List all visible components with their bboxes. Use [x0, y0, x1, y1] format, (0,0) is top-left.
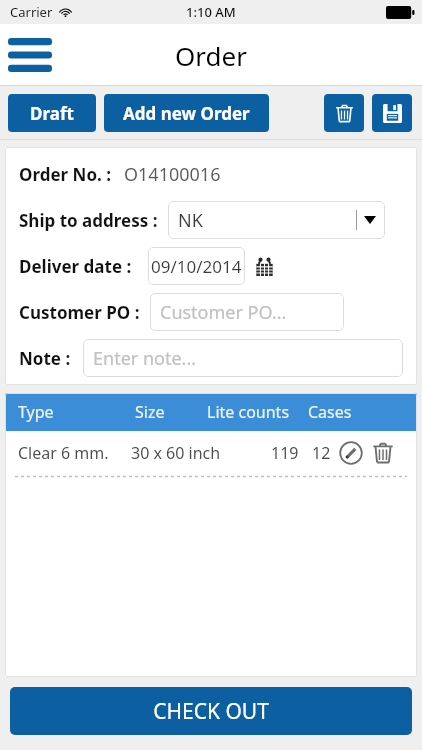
button[interactable]: 09/10/2014	[148, 247, 245, 285]
button[interactable]: Delete order	[324, 94, 364, 132]
staticText: 12	[312, 442, 331, 464]
staticText: Type	[18, 401, 54, 423]
staticText: Enter note...	[93, 346, 197, 371]
staticText: Note :	[19, 347, 71, 370]
button[interactable]: Add new Order	[104, 94, 269, 132]
button[interactable]: Customer PO...	[150, 293, 344, 331]
staticText: Lite counts	[207, 401, 290, 423]
button[interactable]: Clear 6 mm.	[5, 431, 417, 475]
staticText: Clear 6 mm.	[18, 442, 109, 464]
staticText: Cases	[308, 401, 352, 423]
staticText: Ship to address :	[19, 209, 158, 232]
button[interactable]: Enter note...	[83, 339, 403, 377]
button[interactable]: Delete item	[369, 439, 397, 467]
staticText: O14100016	[124, 162, 221, 187]
button[interactable]: CHECK OUT	[10, 687, 412, 735]
staticText: Carrier	[10, 3, 53, 21]
staticText: 119	[271, 442, 299, 464]
staticText: Draft	[30, 102, 74, 125]
staticText: Customer PO :	[19, 301, 140, 324]
button[interactable]: Draft	[8, 94, 96, 132]
staticText: Customer PO...	[160, 300, 287, 325]
staticText: Order No. :	[19, 163, 112, 186]
staticText: Add new Order	[123, 102, 250, 125]
staticText: Order	[175, 38, 247, 73]
staticText: Deliver date :	[19, 255, 132, 278]
button[interactable]: Menu	[6, 35, 54, 75]
button[interactable]: Save order	[372, 94, 412, 132]
staticText: Size	[135, 401, 165, 423]
staticText: CHECK OUT	[153, 697, 269, 726]
staticText: NK	[178, 208, 203, 233]
button[interactable]: Pick date	[252, 254, 276, 278]
staticText: 1:10 AM	[186, 3, 236, 21]
button[interactable]: Edit item	[337, 439, 365, 467]
staticText: 30 x 60 inch	[131, 442, 221, 464]
staticText: 09/10/2014	[151, 255, 242, 278]
button[interactable]: NK	[168, 201, 385, 239]
